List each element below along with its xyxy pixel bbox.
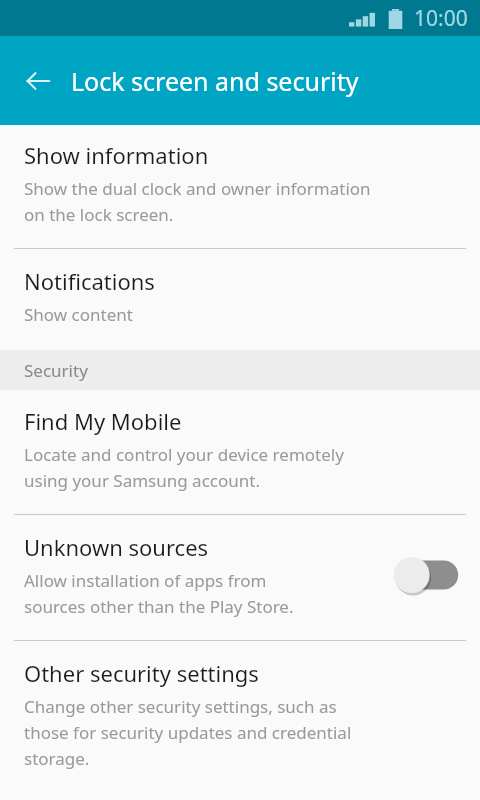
button[interactable]: Other security settings [0, 641, 480, 780]
staticText: Security [24, 359, 88, 382]
staticText: Notifications [24, 266, 155, 296]
staticText: Find My Mobile [24, 406, 182, 436]
staticText: Unknown sources [24, 532, 209, 562]
button[interactable]: Back [12, 55, 64, 107]
staticText: Allow installation of apps from [24, 569, 267, 592]
staticText: storage. [24, 747, 90, 770]
staticText: Other security settings [24, 658, 259, 688]
staticText: those for security updates and credentia… [24, 721, 352, 744]
staticText: Locate and control your device remotely [24, 443, 344, 466]
staticText: Lock screen and security [71, 64, 359, 98]
staticText: sources other than the Play Store. [24, 595, 294, 618]
button[interactable]: Find My Mobile [0, 390, 480, 514]
staticText: 10:00 [414, 4, 468, 33]
button[interactable]: Notifications [0, 249, 480, 350]
staticText: Change other security settings, such as [24, 695, 337, 718]
button[interactable]: Show information [0, 140, 480, 248]
staticText: using your Samsung account. [24, 469, 260, 492]
staticText: Show information [24, 140, 209, 170]
staticText: Show content [24, 303, 133, 326]
button[interactable]: Unknown sources toggle [386, 552, 462, 598]
staticText: Show the dual clock and owner informatio… [24, 177, 371, 200]
staticText: on the lock screen. [24, 203, 174, 226]
button[interactable]: Unknown sources [0, 515, 480, 640]
